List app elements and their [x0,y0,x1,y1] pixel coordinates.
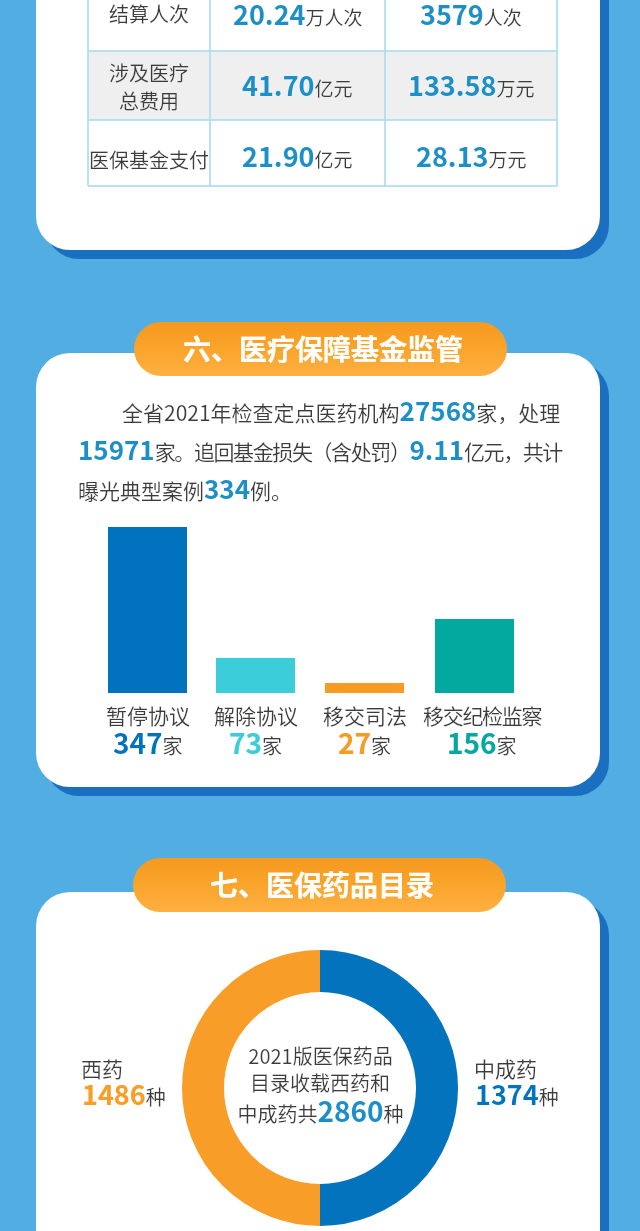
staticText: 涉及医疗 总费用 [109,58,189,114]
staticText: 73家 [229,722,283,763]
staticText: 西药 [81,1053,123,1083]
staticText: 中成药 [474,1053,537,1083]
staticText: 全省2021年检查定点医药机构27568家，处理 [122,391,561,429]
staticText: 中成药共2860种 [237,1090,404,1131]
staticText: 41.70亿元 [242,65,353,104]
staticText: 3579人次 [420,0,522,33]
staticText: 移交司法 [323,700,407,730]
staticText: 目录收载西药和 [250,1068,390,1097]
staticText: 1486种 [82,1074,166,1113]
button[interactable]: 六、医疗保障基金监管 [134,322,507,376]
staticText: 七、医保药品目录 [210,864,435,905]
staticText: 暂停协议 [106,700,190,730]
staticText: 156家 [447,722,517,763]
staticText: 医保基金支付 [89,145,209,174]
staticText: 六、医疗保障基金监管 [183,328,464,369]
staticText: 2021版医保药品 [248,1041,393,1070]
staticText: 曝光典型案例334例。 [78,469,293,507]
staticText: 28.13万元 [416,136,527,175]
staticText: 133.58万元 [408,65,535,104]
staticText: 347家 [113,722,183,763]
staticText: 21.90亿元 [242,136,353,175]
staticText: 20.24万人次 [233,0,363,33]
staticText: 解除协议 [214,700,298,730]
staticText: 结算人次 [109,0,189,28]
staticText: 15971家。追回基金损失（含处罚）9.11亿元，共计 [78,430,562,468]
staticText: 1374种 [475,1074,559,1113]
staticText: 27家 [338,722,392,763]
staticText: 移交纪检监察 [423,700,542,730]
button[interactable]: 七、医保药品目录 [133,858,506,912]
